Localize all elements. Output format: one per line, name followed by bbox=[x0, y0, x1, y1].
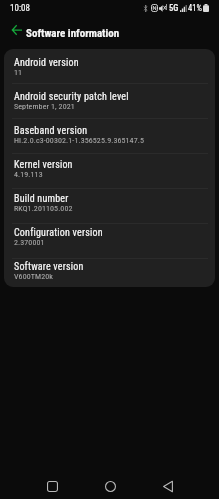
button[interactable]: Build number bbox=[4, 185, 215, 219]
staticText: Baseband version bbox=[14, 125, 88, 137]
staticText: 2.370001 bbox=[14, 238, 45, 247]
button[interactable]: Software version bbox=[4, 253, 215, 287]
staticText: 5G bbox=[169, 3, 179, 13]
staticText: 11 bbox=[14, 68, 23, 77]
button[interactable]: Baseband version bbox=[4, 117, 215, 151]
button[interactable]: Navigate up bbox=[4, 20, 30, 47]
staticText: Software information bbox=[26, 27, 120, 40]
staticText: 4.19.113 bbox=[14, 170, 43, 179]
staticText: HI.2.0.c3-00302.1-1.356525.9.365147.5 bbox=[14, 136, 144, 145]
staticText: Configuration version bbox=[14, 227, 103, 239]
button[interactable]: Android security patch level bbox=[4, 83, 215, 117]
button[interactable]: Recent apps bbox=[30, 471, 74, 499]
staticText: V600TM20k bbox=[14, 272, 53, 281]
staticText: Android version bbox=[14, 57, 79, 69]
staticText: September 1, 2021 bbox=[14, 102, 75, 111]
button[interactable]: Home bbox=[88, 471, 132, 499]
staticText: Build number bbox=[14, 193, 69, 205]
staticText: Kernel version bbox=[14, 159, 73, 171]
staticText: Software version bbox=[14, 261, 84, 273]
staticText: 41% bbox=[188, 3, 202, 13]
button[interactable]: Android version bbox=[4, 49, 215, 83]
staticText: 10:08 bbox=[10, 3, 30, 14]
button[interactable]: Kernel version bbox=[4, 151, 215, 185]
staticText: RKQ1.201105.002 bbox=[14, 204, 73, 213]
button[interactable]: Back bbox=[146, 471, 190, 499]
button[interactable]: Configuration version bbox=[4, 219, 215, 253]
staticText: Android security patch level bbox=[14, 91, 129, 103]
